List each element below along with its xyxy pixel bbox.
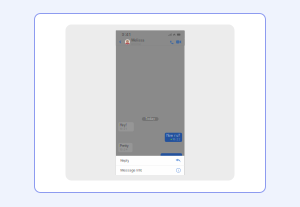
staticText: Melissa	[131, 38, 144, 42]
staticText: Hey!	[120, 123, 127, 127]
button[interactable]: Voice call	[169, 40, 173, 44]
staticText: Pretty	[120, 144, 129, 148]
staticText: 10:22	[173, 138, 181, 141]
staticText: 10:21	[120, 127, 127, 130]
button[interactable]: Video call	[176, 40, 181, 44]
button[interactable]: Reply	[116, 156, 184, 165]
button[interactable]: Back	[119, 40, 121, 44]
staticText: 9:41	[122, 32, 131, 37]
staticText: How r u?	[166, 134, 180, 138]
staticText: Reply	[120, 158, 129, 163]
button[interactable]: Message Info	[116, 166, 184, 175]
staticText: Today	[145, 117, 155, 121]
staticText: 10:24	[120, 148, 128, 151]
staticText: Message Info	[120, 168, 142, 172]
